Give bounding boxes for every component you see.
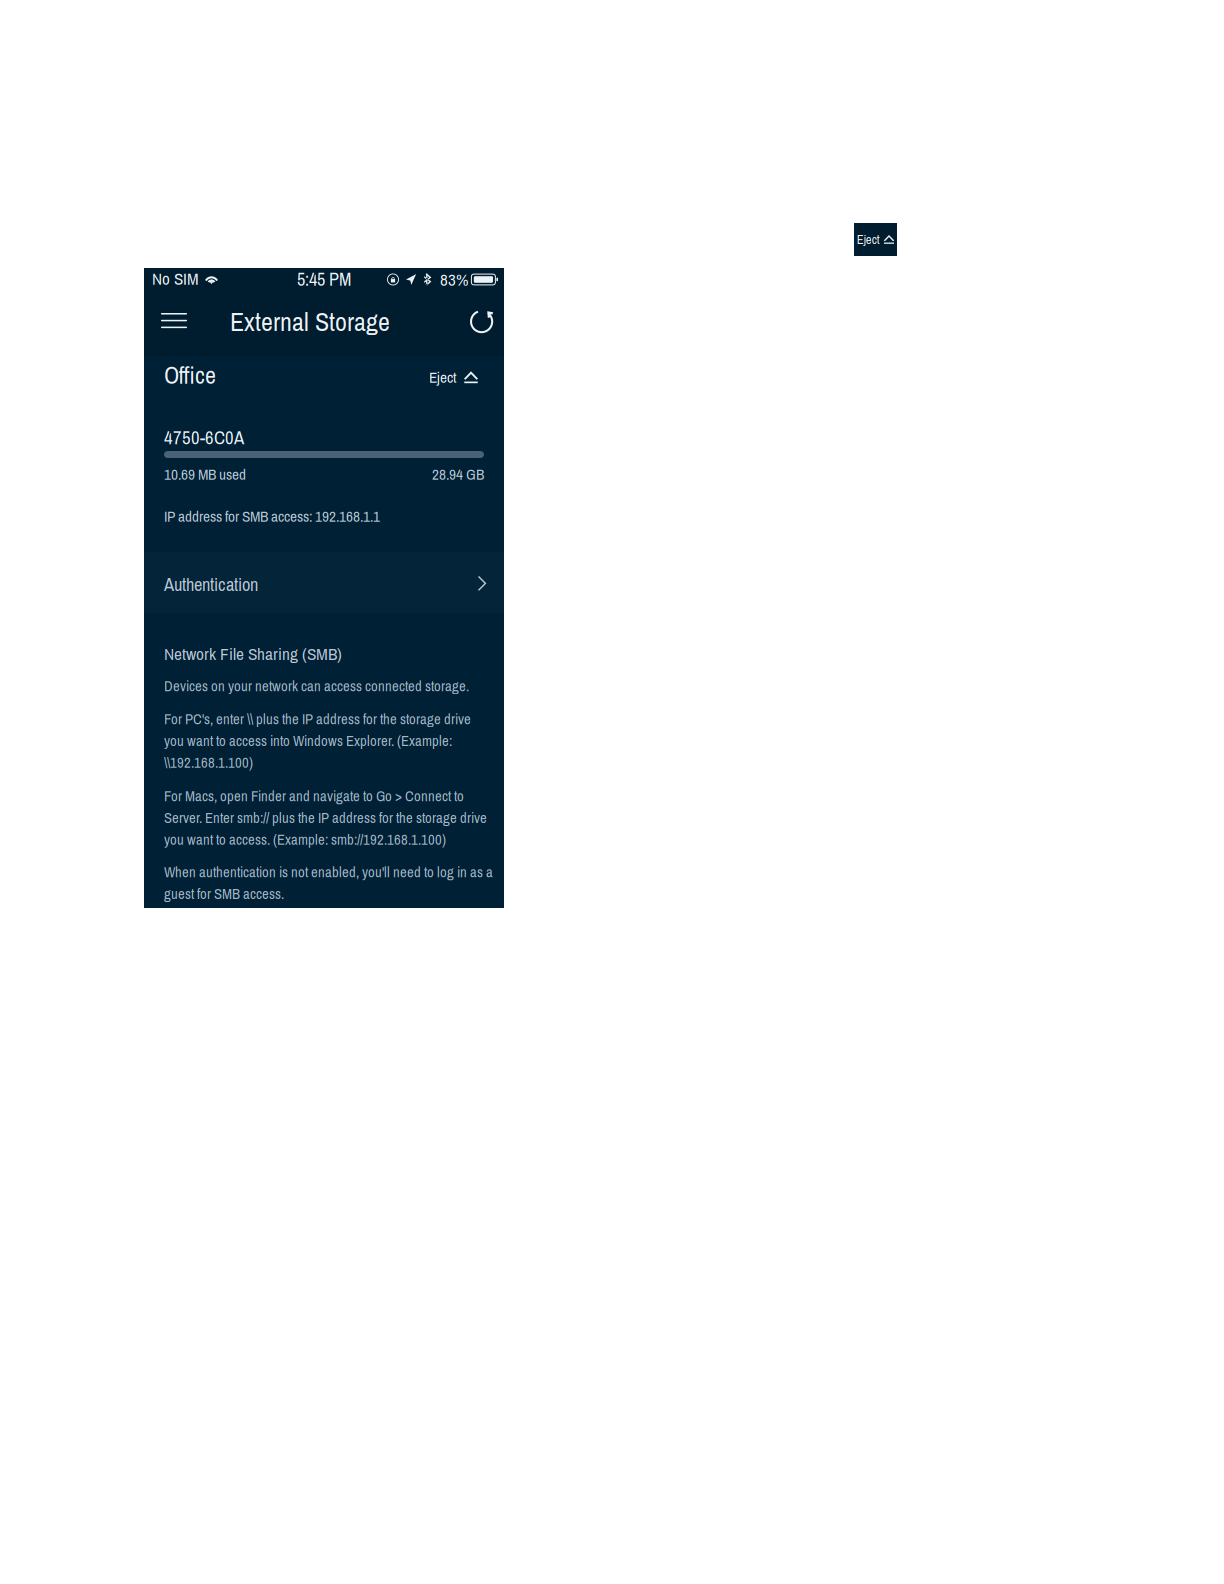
button[interactable]: Refresh bbox=[462, 302, 501, 341]
staticText: Eject bbox=[857, 231, 880, 248]
staticText: Authentication bbox=[164, 572, 258, 597]
button[interactable]: Menu bbox=[151, 303, 197, 338]
staticText: IP address for SMB access: 192.168.1.1 bbox=[164, 506, 380, 527]
staticText: 4750-6C0A bbox=[164, 425, 244, 450]
staticText: Devices on your network can access conne… bbox=[164, 676, 469, 696]
button[interactable]: Authentication bbox=[144, 552, 504, 613]
staticText: When authentication is not enabled, you'… bbox=[164, 862, 493, 903]
staticText: 83% bbox=[440, 268, 468, 291]
staticText: 28.94 GB bbox=[432, 464, 484, 485]
staticText: Office bbox=[164, 359, 216, 391]
staticText: For Macs, open Finder and navigate to Go… bbox=[164, 786, 487, 849]
staticText: 10.69 MB used bbox=[164, 464, 246, 485]
staticText: No SIM bbox=[152, 267, 199, 290]
staticText: 5:45 PM bbox=[297, 267, 351, 291]
staticText: For PC's, enter \⁠\ plus the IP address … bbox=[164, 709, 471, 772]
button[interactable]: Eject bbox=[429, 361, 478, 394]
staticText: External Storage bbox=[230, 304, 390, 339]
staticText: Network File Sharing (SMB) bbox=[164, 642, 342, 665]
staticText: Eject bbox=[429, 367, 456, 388]
